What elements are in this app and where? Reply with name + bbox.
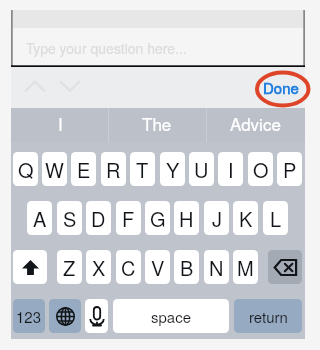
- button[interactable]: Done: [258, 73, 304, 101]
- button[interactable]: I: [218, 152, 243, 186]
- button[interactable]: C: [116, 250, 141, 284]
- button[interactable]: 123: [13, 299, 45, 333]
- staticText: M: [237, 253, 254, 282]
- button[interactable]: Change keyboard: [49, 299, 81, 333]
- staticText: Type your question here...: [26, 38, 187, 58]
- staticText: I: [58, 111, 63, 135]
- staticText: A: [33, 204, 47, 233]
- staticText: Z: [63, 253, 76, 282]
- button[interactable]: The: [108, 108, 206, 142]
- button[interactable]: Backspace: [268, 250, 302, 284]
- staticText: space: [151, 306, 192, 327]
- staticText: Advice: [230, 111, 281, 135]
- staticText: Q: [18, 155, 34, 184]
- button[interactable]: F: [116, 201, 141, 235]
- staticText: P: [283, 155, 297, 184]
- button[interactable]: V: [145, 250, 170, 284]
- button[interactable]: T: [130, 152, 155, 186]
- button[interactable]: W: [42, 152, 67, 186]
- button[interactable]: S: [57, 201, 82, 235]
- button[interactable]: space: [113, 299, 229, 333]
- staticText: D: [91, 204, 106, 233]
- button[interactable]: J: [204, 201, 229, 235]
- staticText: I: [228, 155, 234, 184]
- staticText: return: [249, 306, 288, 327]
- staticText: X: [92, 253, 106, 282]
- button[interactable]: Next field: [53, 76, 87, 98]
- staticText: Done: [263, 77, 299, 98]
- button[interactable]: P: [277, 152, 302, 186]
- staticText: C: [121, 253, 136, 282]
- button[interactable]: H: [174, 201, 199, 235]
- button[interactable]: D: [86, 201, 111, 235]
- button[interactable]: Z: [57, 250, 82, 284]
- button[interactable]: N: [204, 250, 229, 284]
- staticText: L: [270, 204, 282, 233]
- staticText: The: [142, 111, 172, 135]
- staticText: G: [150, 204, 166, 233]
- button[interactable]: X: [86, 250, 111, 284]
- button[interactable]: M: [233, 250, 258, 284]
- button[interactable]: Previous field: [18, 76, 52, 98]
- button[interactable]: A: [27, 201, 52, 235]
- staticText: F: [122, 204, 135, 233]
- staticText: R: [106, 155, 121, 184]
- staticText: Y: [166, 155, 180, 184]
- staticText: T: [136, 155, 149, 184]
- button[interactable]: return: [234, 299, 302, 333]
- button[interactable]: O: [248, 152, 273, 186]
- button[interactable]: G: [145, 201, 170, 235]
- button[interactable]: I: [11, 108, 109, 142]
- button[interactable]: K: [233, 201, 258, 235]
- staticText: B: [180, 253, 194, 282]
- staticText: U: [194, 155, 209, 184]
- staticText: N: [209, 253, 224, 282]
- button[interactable]: L: [263, 201, 288, 235]
- button[interactable]: B: [174, 250, 199, 284]
- button[interactable]: Dictate: [85, 299, 108, 333]
- button[interactable]: Q: [13, 152, 38, 186]
- button[interactable]: E: [71, 152, 96, 186]
- staticText: V: [151, 253, 165, 282]
- staticText: W: [45, 155, 64, 184]
- button[interactable]: Advice: [206, 108, 304, 142]
- staticText: J: [212, 204, 222, 233]
- staticText: K: [239, 204, 253, 233]
- staticText: S: [63, 204, 77, 233]
- staticText: H: [179, 204, 194, 233]
- staticText: E: [77, 155, 91, 184]
- button[interactable]: R: [101, 152, 126, 186]
- staticText: 123: [16, 306, 42, 327]
- button[interactable]: Shift: [13, 250, 47, 284]
- staticText: O: [253, 155, 269, 184]
- button[interactable]: U: [189, 152, 214, 186]
- button[interactable]: Y: [160, 152, 185, 186]
